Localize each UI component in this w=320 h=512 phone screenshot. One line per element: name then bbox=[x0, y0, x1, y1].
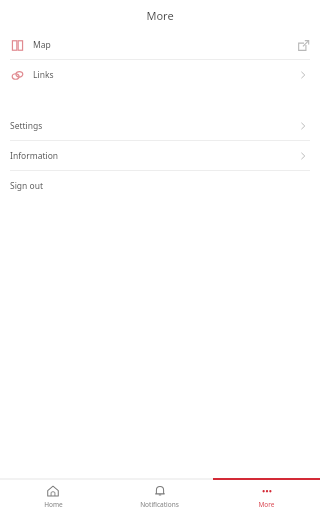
button[interactable]: More bbox=[213, 480, 320, 512]
button[interactable]: Links bbox=[0, 60, 320, 89]
staticText: Sign out bbox=[10, 180, 44, 192]
other: Open Settings bbox=[296, 119, 310, 133]
staticText: Links bbox=[33, 69, 54, 81]
staticText: Information bbox=[10, 150, 59, 162]
staticText: Map bbox=[33, 39, 51, 51]
other: Open Information bbox=[296, 149, 310, 163]
staticText: Home bbox=[44, 500, 63, 509]
other: Open Map externally bbox=[296, 38, 310, 52]
staticText: More bbox=[258, 500, 275, 509]
button[interactable]: Home bbox=[0, 480, 106, 512]
button[interactable]: Map bbox=[0, 30, 320, 59]
button[interactable]: Information bbox=[0, 141, 320, 170]
staticText: More bbox=[146, 8, 174, 23]
staticText: Settings bbox=[10, 120, 43, 132]
other: Open Links bbox=[296, 68, 310, 82]
button[interactable]: Settings bbox=[0, 111, 320, 140]
button[interactable]: Sign out bbox=[0, 171, 320, 200]
button[interactable]: Notifications bbox=[106, 480, 213, 512]
staticText: Notifications bbox=[140, 500, 179, 509]
